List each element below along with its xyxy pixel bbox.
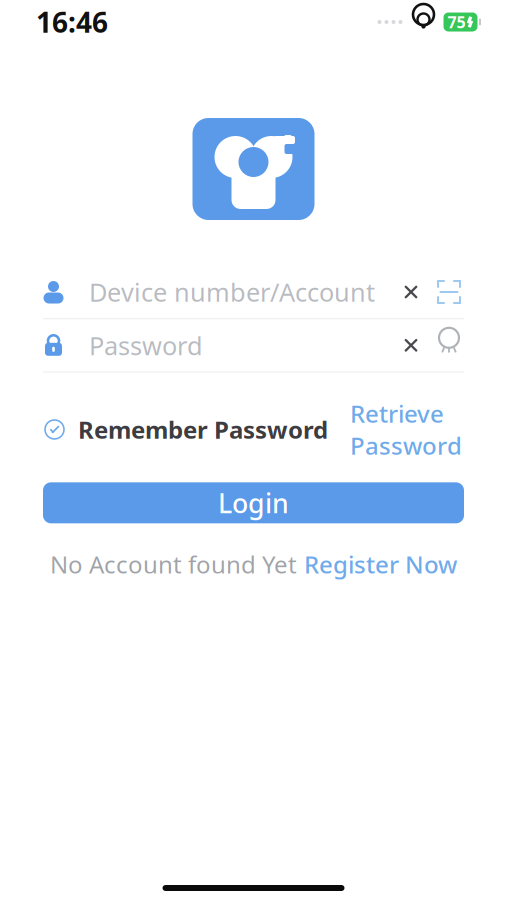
staticText: Device number/Account [89, 275, 375, 309]
button[interactable]: Login [43, 482, 464, 523]
staticText: Password [89, 328, 203, 362]
staticText: Login [218, 485, 289, 520]
staticText: Retrieve Password [350, 398, 462, 461]
button[interactable]: Show password [434, 330, 464, 360]
button[interactable]: Retrieve Password [350, 398, 462, 461]
button[interactable]: Register Now [304, 548, 457, 580]
button[interactable]: Clear account [396, 277, 426, 307]
button[interactable]: Scan QR code [434, 277, 464, 307]
staticText: No Account found Yet [50, 548, 297, 580]
button[interactable]: Clear password [396, 330, 426, 360]
staticText: Register Now [304, 548, 457, 580]
staticText: 75 [447, 11, 465, 33]
staticText: 16:46 [36, 3, 108, 41]
staticText: Remember Password [78, 413, 328, 445]
button[interactable]: Remember Password [45, 413, 328, 445]
